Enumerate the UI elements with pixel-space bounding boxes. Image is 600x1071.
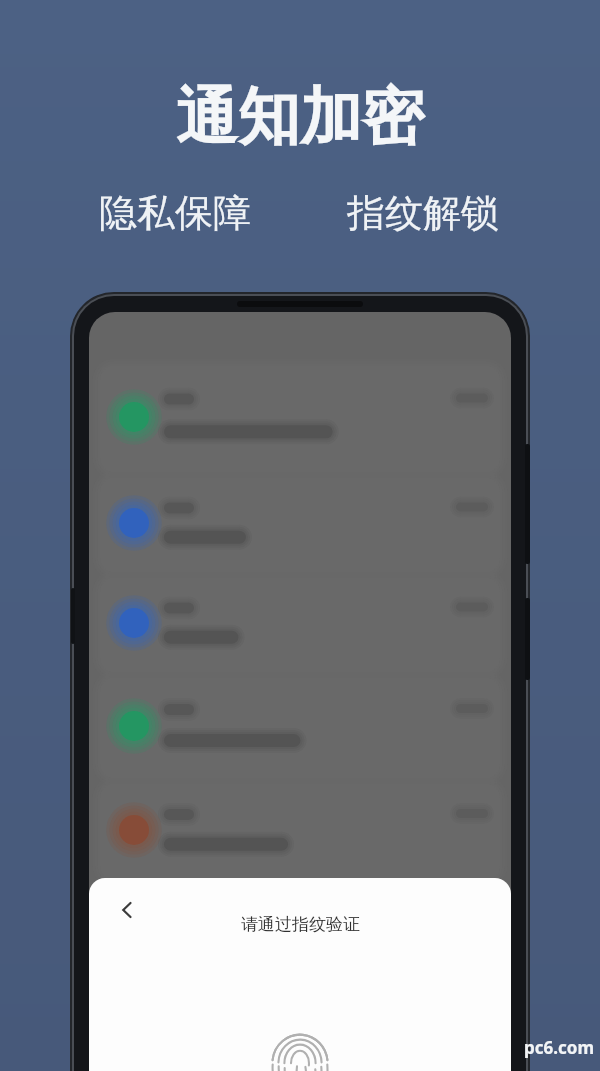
button[interactable]: Back — [107, 890, 147, 930]
button[interactable]: Fingerprint sensor — [270, 1026, 330, 1071]
staticText: 隐私保障 — [99, 189, 251, 237]
staticText: 请通过指纹验证 — [241, 914, 360, 935]
staticText: pc6.com — [524, 1036, 594, 1059]
staticText: 通知加密 — [176, 78, 424, 156]
staticText: 指纹解锁 — [347, 189, 499, 237]
